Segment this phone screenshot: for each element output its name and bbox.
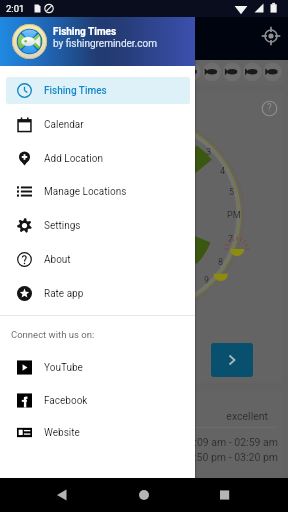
button[interactable]: Settings bbox=[6, 212, 190, 239]
button[interactable]: YouTube bbox=[6, 354, 190, 381]
staticText: Manage Locations bbox=[44, 186, 127, 198]
staticText: PM bbox=[227, 210, 241, 221]
staticText: Facebook bbox=[44, 395, 88, 407]
staticText: Settings bbox=[44, 220, 81, 232]
staticText: 7 bbox=[228, 234, 234, 245]
staticText: Add Location bbox=[44, 153, 103, 165]
staticText: excellent bbox=[6, 410, 268, 422]
staticText: YouTube bbox=[44, 362, 83, 374]
staticText: Connect with us on: bbox=[11, 329, 95, 340]
staticText: 8 bbox=[218, 257, 224, 268]
staticText: Fishing Times bbox=[44, 85, 107, 97]
staticText: Website bbox=[44, 427, 80, 439]
staticText: About bbox=[44, 254, 71, 266]
button[interactable]: Website bbox=[6, 419, 190, 446]
staticText: 02:50 pm - 03:20 pm bbox=[6, 451, 278, 463]
staticText: ? bbox=[267, 102, 272, 114]
staticText: by fishingreminder.com bbox=[53, 38, 157, 50]
button[interactable]: Help bbox=[257, 96, 281, 120]
staticText: Fishing Times bbox=[53, 26, 117, 38]
button[interactable]: Calendar bbox=[6, 111, 190, 138]
staticText: 2:01 bbox=[6, 3, 25, 14]
button[interactable]: My location bbox=[254, 19, 288, 53]
button[interactable]: Add Location bbox=[6, 145, 190, 172]
button[interactable]: About bbox=[6, 246, 190, 273]
button[interactable]: Facebook bbox=[6, 387, 190, 414]
button[interactable]: Rate app bbox=[6, 280, 190, 307]
staticText: 5 bbox=[229, 187, 235, 198]
staticText: Calendar bbox=[44, 119, 84, 131]
button[interactable]: Manage Locations bbox=[6, 178, 190, 205]
staticText: 1 bbox=[54, 185, 60, 196]
button[interactable]: Fishing Times bbox=[6, 77, 190, 104]
staticText: 3 bbox=[206, 147, 212, 158]
staticText: 02:09 am - 02:59 am bbox=[6, 436, 278, 448]
staticText: 4 bbox=[220, 166, 226, 177]
button[interactable]: Next bbox=[211, 343, 253, 377]
staticText: Rate app bbox=[44, 288, 84, 300]
staticText: 9 bbox=[204, 275, 210, 286]
